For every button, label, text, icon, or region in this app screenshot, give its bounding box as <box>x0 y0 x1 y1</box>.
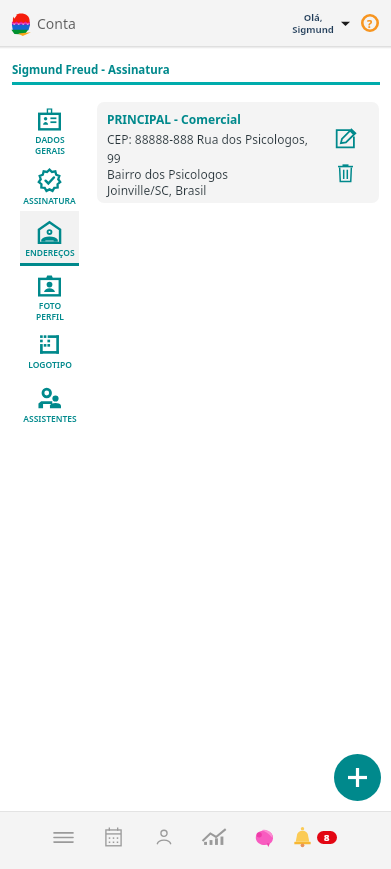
button[interactable]: ASSINATURA <box>20 163 79 211</box>
staticText: Olá, Sigmund <box>292 11 334 36</box>
staticText: Conta <box>37 14 76 33</box>
staticText: ASSISTENTES <box>23 413 77 425</box>
staticText: LOGOTIPO <box>28 359 72 371</box>
button[interactable]: ENDEREÇOS <box>20 211 79 266</box>
button[interactable]: DADOS GERAIS <box>20 102 79 160</box>
button[interactable]: Mente <box>247 820 281 854</box>
button[interactable]: PRINCIPAL - Comercial <box>97 102 379 203</box>
staticText: CEP: 88888-888 Rua dos Psicologos, 99 <box>107 131 319 166</box>
button[interactable]: Editar <box>330 123 360 153</box>
staticText: Joinville/SC, Brasil <box>107 182 207 198</box>
staticText: ASSINATURA <box>23 195 76 207</box>
button[interactable]: Notificações <box>294 826 337 848</box>
button[interactable]: Agenda <box>96 820 130 854</box>
staticText: 8 <box>324 831 330 844</box>
button[interactable]: LOGOTIPO <box>20 327 79 375</box>
staticText: DADOS GERAIS <box>35 134 65 156</box>
button[interactable]: Ajuda <box>358 11 382 35</box>
staticText: Sigmund Freud - Assinatura <box>12 62 170 78</box>
button[interactable]: Adicionar <box>334 754 381 801</box>
button[interactable]: Menu <box>46 820 80 854</box>
button[interactable]: Olá, Sigmund <box>292 11 350 36</box>
button[interactable]: Excluir <box>332 159 359 186</box>
staticText: Bairro dos Psicologos <box>107 166 229 182</box>
staticText: ? <box>367 16 373 31</box>
button[interactable]: Perfil <box>147 820 181 854</box>
staticText: FOTO PERFIL <box>36 300 64 322</box>
staticText: ENDEREÇOS <box>25 247 75 259</box>
button[interactable]: ASSISTENTES <box>20 381 79 429</box>
button[interactable]: Relatórios <box>197 820 231 854</box>
button[interactable]: FOTO PERFIL <box>20 268 79 326</box>
staticText: PRINCIPAL - Comercial <box>107 111 241 127</box>
